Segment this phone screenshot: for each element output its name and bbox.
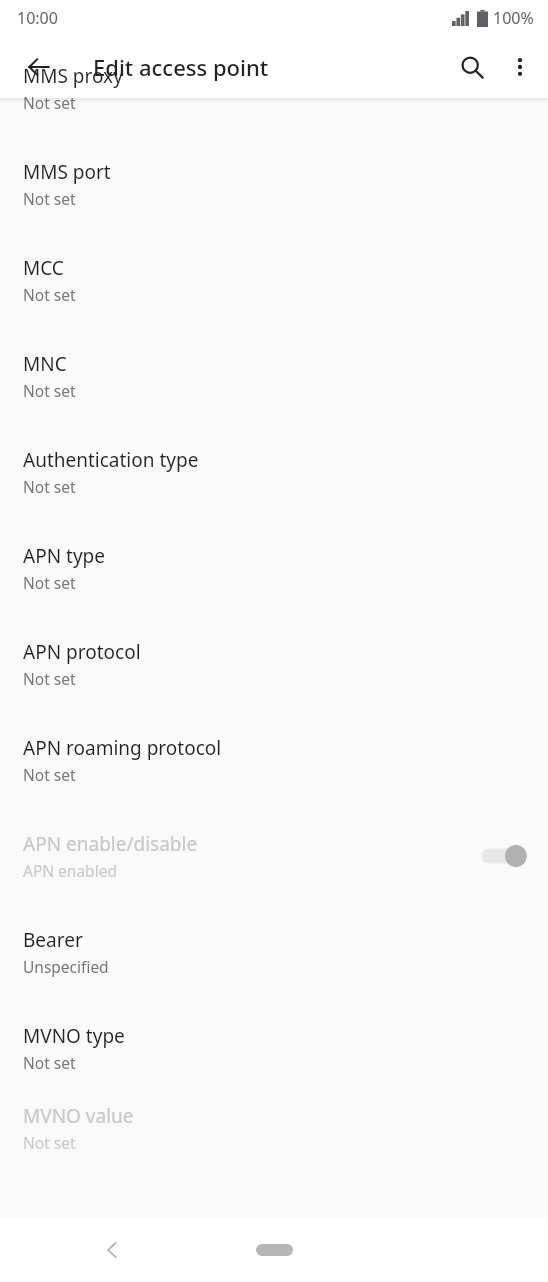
staticText: Not set (23, 284, 76, 305)
staticText: Not set (23, 668, 76, 689)
staticText: Not set (23, 380, 76, 401)
button[interactable]: MMS proxy (0, 40, 548, 136)
staticText: Unspecified (23, 956, 109, 977)
staticText: Bearer (23, 927, 83, 953)
staticText: APN roaming protocol (23, 735, 222, 761)
staticText: MNC (23, 351, 67, 377)
button[interactable]: MVNO value (0, 1096, 548, 1160)
staticText: Not set (23, 764, 76, 785)
button[interactable]: MVNO type (0, 1000, 548, 1096)
button[interactable]: More options (496, 43, 544, 91)
staticText: Not set (23, 572, 76, 593)
button[interactable]: APN type (0, 520, 548, 616)
staticText: APN enable/disable (23, 831, 198, 857)
button[interactable]: APN enable/disable toggle (476, 836, 534, 876)
button[interactable]: Bearer (0, 904, 548, 1000)
staticText: Not set (23, 1052, 76, 1073)
staticText: Authentication type (23, 447, 199, 473)
button[interactable]: APN roaming protocol (0, 712, 548, 808)
button[interactable]: MMS port (0, 136, 548, 232)
staticText: MMS port (23, 159, 111, 185)
staticText: Not set (23, 188, 76, 209)
button[interactable]: Authentication type (0, 424, 548, 520)
button[interactable]: MNC (0, 328, 548, 424)
staticText: Edit access point (93, 52, 269, 82)
staticText: APN enabled (23, 860, 117, 881)
button[interactable]: Search (448, 43, 496, 91)
staticText: 100% (493, 7, 534, 29)
staticText: APN type (23, 543, 105, 569)
button[interactable]: Back (89, 1226, 137, 1274)
staticText: MVNO value (23, 1103, 134, 1129)
button[interactable]: MCC (0, 232, 548, 328)
staticText: APN protocol (23, 639, 141, 665)
staticText: Not set (23, 476, 76, 497)
staticText: Not set (23, 1132, 76, 1153)
button[interactable]: APN protocol (0, 616, 548, 712)
button[interactable]: Back (15, 43, 63, 91)
button[interactable]: Home (244, 1234, 304, 1266)
staticText: MMS proxy (23, 63, 123, 89)
staticText: MVNO type (23, 1023, 125, 1049)
staticText: 10:00 (17, 7, 58, 29)
button[interactable]: APN enable/disable (0, 808, 548, 904)
staticText: MCC (23, 255, 64, 281)
staticText: Not set (23, 92, 76, 113)
